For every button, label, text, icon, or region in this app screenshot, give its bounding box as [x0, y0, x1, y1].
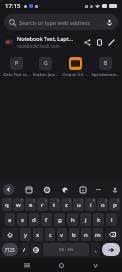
- staticText: 17:15: [5, 2, 21, 10]
- button[interactable]: s: [17, 213, 27, 226]
- staticText: g: [58, 216, 62, 224]
- staticText: Speedomete…: [91, 72, 120, 78]
- button[interactable]: y: [20, 228, 31, 241]
- button[interactable]: x: [33, 228, 43, 241]
- staticText: .: [95, 246, 97, 253]
- button[interactable]: r: [37, 198, 48, 211]
- staticText: e: [29, 201, 33, 209]
- staticText: y: [24, 231, 28, 239]
- button[interactable]: f: [41, 213, 52, 226]
- staticText: x: [36, 231, 40, 239]
- button[interactable]: Open in new tab: [93, 36, 105, 48]
- staticText: 7: [81, 199, 83, 203]
- button[interactable]: g: [54, 213, 65, 226]
- button[interactable]: Home: [54, 258, 68, 272]
- staticText: p: [113, 201, 117, 209]
- staticText: 6: [69, 199, 71, 203]
- button[interactable]: Translate: [78, 185, 87, 194]
- staticText: 0: [117, 199, 119, 203]
- staticText: Octane 2.0 …: [62, 72, 88, 78]
- button[interactable]: v: [57, 228, 67, 241]
- button[interactable]: n: [81, 228, 91, 241]
- staticText: k: [97, 216, 101, 224]
- staticText: r: [41, 201, 44, 209]
- button[interactable]: Back: [88, 258, 102, 272]
- staticText: o: [101, 201, 105, 209]
- button[interactable]: p: [109, 198, 120, 211]
- button[interactable]: Stickers: [60, 185, 69, 194]
- staticText: 5: [57, 199, 59, 203]
- staticText: j: [85, 216, 87, 224]
- button[interactable]: B: [90, 55, 120, 80]
- button[interactable]: Shift: [2, 228, 18, 241]
- staticText: 9: [105, 199, 107, 203]
- button[interactable]: Edit query: [105, 36, 117, 48]
- staticText: s: [21, 216, 24, 224]
- staticText: f: [45, 216, 48, 224]
- button[interactable]: Change language: [31, 243, 41, 256]
- button[interactable]: Go: [102, 243, 120, 256]
- button[interactable]: b: [69, 228, 79, 241]
- button[interactable]: m: [93, 228, 103, 241]
- button[interactable]: i: [85, 198, 96, 211]
- staticText: a: [8, 216, 12, 224]
- staticText: Notebook Test, Lapt…: [17, 35, 73, 42]
- button[interactable]: c: [45, 228, 55, 241]
- button[interactable]: P: [2, 55, 31, 80]
- staticText: B: [104, 60, 108, 67]
- staticText: /: [23, 246, 26, 253]
- button[interactable]: u: [73, 198, 84, 211]
- button[interactable]: q: [2, 198, 12, 211]
- button[interactable]: ?123: [2, 243, 18, 256]
- staticText: m: [95, 231, 101, 239]
- button[interactable]: d: [29, 213, 39, 226]
- staticText: b: [72, 231, 76, 239]
- button[interactable]: a: [5, 213, 15, 226]
- button[interactable]: t: [49, 198, 60, 211]
- staticText: Search or type web address: [19, 19, 104, 26]
- button[interactable]: Voice input: [110, 185, 119, 194]
- staticText: d: [32, 216, 36, 224]
- staticText: l: [111, 216, 113, 224]
- staticText: 1: [9, 199, 11, 203]
- button[interactable]: z: [61, 198, 72, 211]
- button[interactable]: Share: [81, 36, 93, 48]
- button[interactable]: DE • EN: [43, 243, 89, 256]
- staticText: 2: [21, 199, 23, 203]
- staticText: q: [5, 201, 9, 209]
- button[interactable]: Settings: [42, 185, 51, 194]
- button[interactable]: w: [13, 198, 24, 211]
- staticText: t: [53, 201, 56, 209]
- button[interactable]: h: [67, 213, 78, 226]
- button[interactable]: /: [20, 243, 29, 256]
- staticText: Dein Test st…: [3, 72, 30, 78]
- button[interactable]: Collapse toolbar: [3, 184, 14, 195]
- button[interactable]: k: [93, 213, 104, 226]
- button[interactable]: Search or type web address: [4, 14, 118, 30]
- staticText: h: [71, 216, 75, 224]
- staticText: n: [84, 231, 88, 239]
- button[interactable]: G: [31, 55, 60, 80]
- button[interactable]: e: [25, 198, 36, 211]
- staticText: 4: [45, 199, 47, 203]
- button[interactable]: l: [106, 213, 117, 226]
- button[interactable]: j: [80, 213, 91, 226]
- staticText: 3: [33, 199, 35, 203]
- button[interactable]: o: [97, 198, 108, 211]
- button[interactable]: Octane 2.0 …: [60, 55, 90, 80]
- button[interactable]: Recents: [20, 258, 34, 272]
- staticText: c: [49, 231, 52, 239]
- staticText: 8: [93, 199, 95, 203]
- staticText: DE • EN: [59, 247, 73, 252]
- staticText: w: [16, 201, 21, 209]
- button[interactable]: Notebook Test, Lapt…: [0, 32, 122, 52]
- button[interactable]: .: [91, 243, 100, 256]
- staticText: i: [90, 201, 92, 209]
- button[interactable]: Backspace: [105, 228, 120, 241]
- staticText: G: [44, 60, 48, 67]
- staticText: P: [15, 60, 19, 67]
- button[interactable]: Clipboard: [24, 185, 33, 194]
- staticText: notebookcheck.com: [17, 43, 60, 49]
- other: Voice search: [106, 19, 113, 26]
- staticText: z: [65, 201, 68, 209]
